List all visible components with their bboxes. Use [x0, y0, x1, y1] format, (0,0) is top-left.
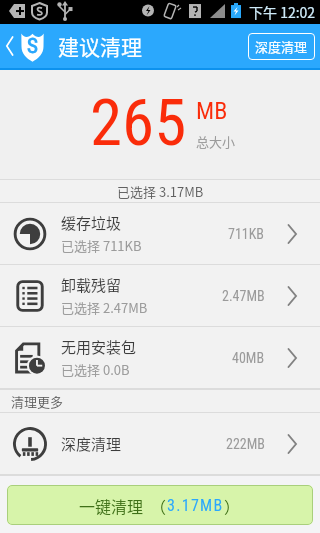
staticText: 已选择 2.47MB — [61, 298, 148, 317]
staticText: 2.47MB — [222, 288, 265, 304]
staticText: 清理更多 — [11, 392, 64, 411]
staticText: 已选择 3.17MB — [117, 182, 204, 201]
staticText: 711KB — [228, 226, 265, 242]
staticText: MB — [196, 97, 228, 125]
staticText: （ — [150, 494, 167, 517]
button[interactable]: 卸载残留 — [0, 265, 320, 326]
staticText: 无用安装包 — [61, 336, 137, 358]
button[interactable]: 无用安装包 — [0, 327, 320, 388]
button[interactable]: 一键清理 — [7, 485, 313, 525]
staticText: 265 — [90, 85, 187, 161]
staticText: 下午 12:02 — [249, 2, 316, 22]
button[interactable]: 深度清理 — [248, 33, 315, 60]
staticText: 卸载残留 — [61, 274, 122, 296]
staticText: 深度清理 — [61, 433, 122, 455]
button[interactable]: Back — [0, 24, 50, 68]
staticText: 建议清理 — [58, 31, 142, 61]
staticText: 深度清理 — [255, 37, 308, 56]
button[interactable]: 缓存垃圾 — [0, 203, 320, 264]
button[interactable]: 深度清理 — [0, 413, 320, 474]
staticText: 总大小 — [196, 132, 236, 151]
staticText: 已选择 0.0B — [61, 360, 130, 379]
staticText: 一键清理 — [79, 494, 144, 517]
staticText: 3.17MB — [167, 496, 224, 515]
staticText: 40MB — [232, 350, 265, 366]
staticText: S — [27, 34, 38, 59]
staticText: ） — [224, 494, 241, 517]
staticText: 缓存垃圾 — [61, 212, 122, 234]
staticText: 已选择 711KB — [61, 236, 142, 255]
staticText: 222MB — [226, 436, 265, 452]
